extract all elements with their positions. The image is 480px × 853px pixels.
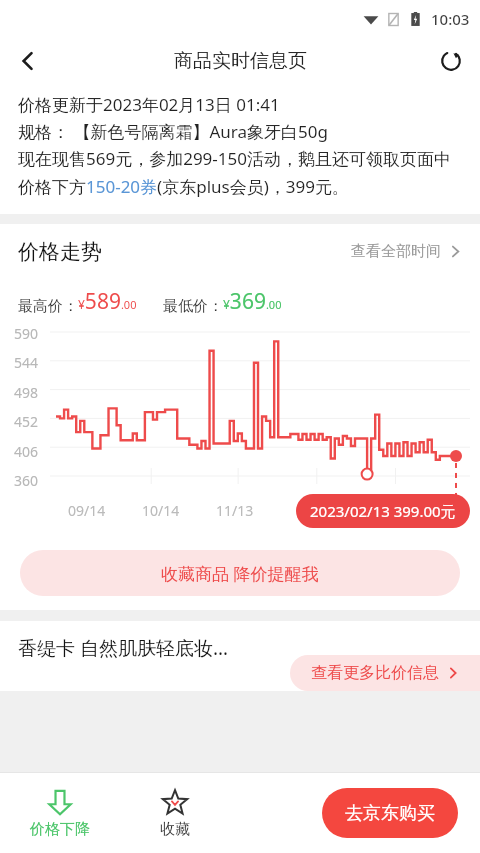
staticText: 10/14 (142, 501, 180, 520)
staticText: 去京东购买 (345, 802, 435, 825)
button[interactable]: 价格下降 (0, 773, 120, 853)
button[interactable]: 去京东购买 (322, 788, 458, 838)
staticText: 2023/02/13 399.00元 (310, 501, 456, 521)
staticText: ¥369.00 (223, 287, 282, 316)
staticText: 规格： 【新色号隔离霜】Aura象牙白50g (18, 120, 328, 143)
staticText: 商品实时信息页 (174, 49, 307, 73)
staticText: 价格下降 (30, 820, 90, 839)
staticText: 10:03 (431, 9, 470, 29)
staticText: 最低价： (163, 297, 223, 316)
staticText: 11/13 (216, 501, 254, 520)
staticText: 406 (14, 442, 39, 461)
staticText: 查看全部时间 (351, 242, 441, 261)
staticText: 现在现售569元，参加299-150活动，鹅且还可领取页面中价格下方150-20… (18, 147, 462, 198)
staticText: 价格更新于2023年02月13日 01:41 (18, 93, 280, 116)
button[interactable]: 查看更多比价信息 (290, 655, 480, 691)
staticText: 收藏商品 降价提醒我 (161, 562, 319, 585)
staticText: 价格走势 (18, 239, 102, 265)
staticText: 香缇卡 自然肌肤轻底妆… (18, 635, 228, 661)
staticText: 360 (14, 471, 39, 490)
button[interactable]: Refresh (430, 40, 472, 82)
staticText: 452 (14, 412, 39, 431)
staticText: 收藏 (160, 820, 190, 839)
staticText: 最高价： (18, 297, 78, 316)
staticText: 590 (14, 324, 39, 343)
staticText: 544 (14, 353, 39, 372)
button[interactable]: 收藏 (120, 773, 230, 853)
staticText: ¥589.00 (78, 287, 137, 316)
button[interactable]: 收藏商品 降价提醒我 (20, 550, 460, 596)
button[interactable]: 查看全部时间 (347, 238, 466, 265)
staticText: 498 (14, 383, 39, 402)
staticText: 查看更多比价信息 (311, 663, 439, 683)
button[interactable]: Back (6, 39, 50, 83)
staticText: 09/14 (68, 501, 106, 520)
